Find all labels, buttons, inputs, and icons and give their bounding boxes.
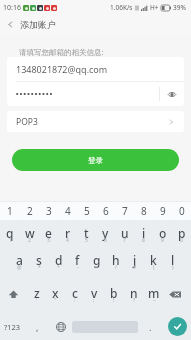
button[interactable]: q: [0, 221, 20, 247]
button[interactable]: l: [163, 247, 182, 275]
staticText: d: [55, 252, 63, 268]
staticText: ,: [36, 321, 39, 333]
button[interactable]: Shift: [0, 275, 27, 313]
staticText: .: [149, 321, 152, 333]
button[interactable]: d: [49, 247, 68, 275]
button[interactable]: [7, 82, 159, 106]
staticText: n: [130, 285, 138, 301]
button[interactable]: Show password: [160, 82, 184, 106]
button[interactable]: y: [96, 221, 115, 247]
staticText: 3: [47, 237, 50, 244]
button[interactable]: Back: [0, 15, 20, 34]
button[interactable]: v: [84, 275, 104, 313]
button[interactable]: x: [46, 275, 65, 313]
button[interactable]: k: [144, 247, 163, 275]
button[interactable]: b: [104, 275, 124, 313]
button[interactable]: z: [27, 275, 46, 313]
button[interactable]: 1348021872@qq.com: [7, 57, 184, 81]
staticText: p: [178, 225, 186, 241]
staticText: 10:16: [3, 3, 21, 13]
button[interactable]: u: [115, 221, 134, 247]
staticText: ?123: [4, 322, 21, 332]
button[interactable]: i: [134, 221, 153, 247]
staticText: 4: [65, 204, 71, 218]
staticText: 7: [123, 237, 126, 244]
staticText: h: [112, 252, 120, 268]
staticText: 5: [85, 237, 88, 244]
button[interactable]: c: [65, 275, 84, 313]
button[interactable]: n: [124, 275, 144, 313]
staticText: 8: [141, 204, 147, 218]
staticText: 1: [9, 237, 12, 244]
button[interactable]: t: [77, 221, 96, 247]
staticText: w: [25, 225, 35, 241]
button[interactable]: g: [87, 247, 106, 275]
staticText: k: [150, 252, 157, 268]
button[interactable]: j: [125, 247, 144, 275]
staticText: 2: [28, 237, 31, 244]
staticText: i: [142, 225, 146, 241]
staticText: :: [74, 297, 76, 304]
button[interactable]: ,: [25, 313, 49, 340]
staticText: f: [75, 252, 80, 268]
staticText: 39%: [173, 3, 186, 12]
button[interactable]: ?123: [0, 313, 25, 340]
button[interactable]: 4: [58, 202, 77, 220]
button[interactable]: Enter: [163, 313, 191, 340]
staticText: 0: [180, 237, 183, 244]
button[interactable]: h: [106, 247, 125, 275]
staticText: m: [148, 285, 160, 301]
button[interactable]: .: [138, 313, 163, 340]
staticText: ;: [93, 297, 95, 304]
staticText: b: [110, 285, 118, 301]
button[interactable]: 2: [20, 202, 39, 220]
staticText: r: [65, 225, 71, 241]
staticText: g: [93, 252, 101, 268]
button[interactable]: a: [9, 247, 29, 275]
button[interactable]: 登录: [12, 149, 179, 171]
button[interactable]: 1: [0, 202, 20, 220]
staticText: 1: [7, 204, 13, 218]
staticText: j: [133, 252, 137, 268]
staticText: 登录: [88, 156, 103, 165]
button[interactable]: s: [29, 247, 49, 275]
button[interactable]: r: [58, 221, 77, 247]
staticText: @: [17, 264, 22, 271]
button[interactable]: o: [153, 221, 172, 247]
staticText: 添加账户: [20, 19, 56, 30]
staticText: ): [172, 264, 174, 271]
button[interactable]: e: [39, 221, 58, 247]
button[interactable]: Backspace: [164, 275, 191, 313]
staticText: 9: [161, 237, 164, 244]
staticText: q: [6, 225, 14, 241]
staticText: ': [36, 297, 38, 304]
staticText: ?: [133, 297, 136, 304]
button[interactable]: 6: [96, 202, 115, 220]
button[interactable]: 0: [172, 202, 191, 220]
staticText: *: [38, 264, 41, 271]
button[interactable]: POP3: [7, 111, 184, 132]
staticText: z: [34, 285, 40, 301]
staticText: e: [45, 225, 52, 241]
staticText: -: [77, 264, 79, 271]
staticText: !: [113, 297, 115, 304]
staticText: H+: [150, 3, 159, 12]
button[interactable]: 3: [39, 202, 58, 220]
button[interactable]: w: [20, 221, 39, 247]
staticText: o: [159, 225, 167, 241]
staticText: POP3: [16, 116, 38, 128]
staticText: 9: [160, 204, 166, 218]
staticText: =: [95, 264, 98, 271]
button[interactable]: 8: [134, 202, 153, 220]
button[interactable]: p: [172, 221, 191, 247]
staticText: 3: [46, 204, 52, 218]
button[interactable]: Change keyboard language: [49, 313, 72, 340]
button[interactable]: f: [68, 247, 87, 275]
button[interactable]: 7: [115, 202, 134, 220]
button[interactable]: 5: [77, 202, 96, 220]
staticText: 请填写您邮箱的相关信息:: [19, 47, 104, 57]
button[interactable]: m: [144, 275, 164, 313]
staticText: 4: [66, 237, 69, 244]
button[interactable]: 9: [153, 202, 172, 220]
